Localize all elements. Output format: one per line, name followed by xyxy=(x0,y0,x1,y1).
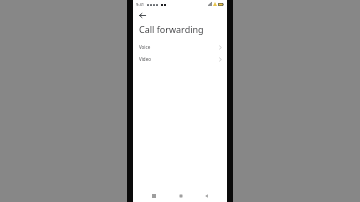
staticText: Call forwarding xyxy=(139,23,204,35)
staticText: Voice xyxy=(139,44,219,50)
button[interactable]: Recent apps xyxy=(148,190,159,201)
button[interactable]: Voice xyxy=(133,41,227,53)
staticText: Video xyxy=(139,56,219,62)
button[interactable]: Video xyxy=(133,53,227,65)
button[interactable]: Home xyxy=(175,190,186,201)
staticText: 9:41 xyxy=(136,2,144,7)
button[interactable]: Navigate up xyxy=(137,10,148,21)
button[interactable]: Back xyxy=(201,190,212,201)
